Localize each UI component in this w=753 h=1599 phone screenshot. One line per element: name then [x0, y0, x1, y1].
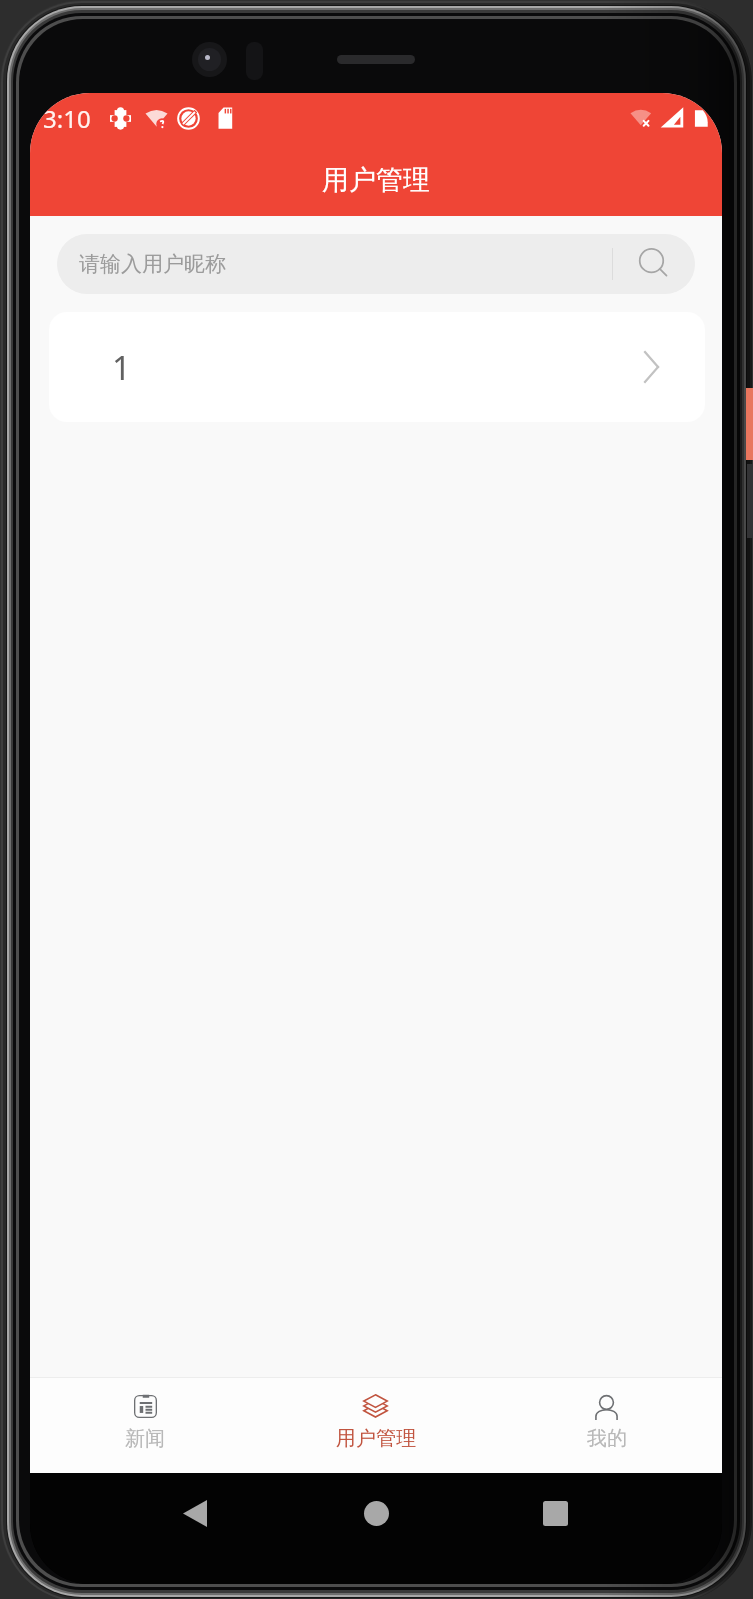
- button[interactable]: 我的: [491, 1378, 722, 1473]
- staticText: 用户管理: [30, 163, 722, 197]
- button[interactable]: 搜索: [613, 234, 695, 294]
- button[interactable]: 请输入用户昵称: [57, 234, 695, 294]
- button[interactable]: 1: [49, 312, 705, 422]
- staticText: 1: [112, 345, 131, 390]
- staticText: 新闻: [125, 1426, 165, 1451]
- button[interactable]: Home: [354, 1491, 398, 1535]
- staticText: 请输入用户昵称: [79, 251, 612, 277]
- button[interactable]: Recents: [533, 1491, 577, 1535]
- staticText: 用户管理: [336, 1426, 416, 1451]
- button[interactable]: Back: [173, 1491, 217, 1535]
- button[interactable]: 新闻: [30, 1378, 260, 1473]
- button[interactable]: 用户管理: [260, 1378, 491, 1473]
- staticText: 3:10: [43, 102, 91, 135]
- staticText: 我的: [587, 1426, 627, 1451]
